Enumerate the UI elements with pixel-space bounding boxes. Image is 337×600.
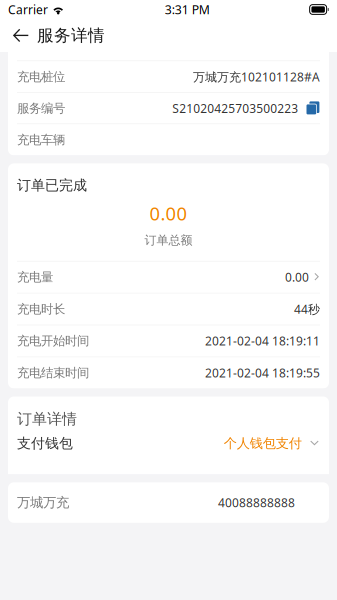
staticText: 44秒 <box>294 301 320 317</box>
staticText: 充电量 <box>17 269 53 285</box>
button[interactable]: 万城万充 <box>8 482 329 523</box>
staticText: 支付钱包 <box>17 435 73 452</box>
button[interactable]: 支付钱包 <box>8 428 329 458</box>
button[interactable]: Back <box>5 20 37 50</box>
staticText: 万城万充 <box>17 494 69 511</box>
staticText: 万城万充102101128#A <box>193 69 320 85</box>
staticText: 订单已完成 <box>17 176 87 194</box>
staticText: 2021-02-04 18:19:11 <box>205 333 320 349</box>
staticText: 个人钱包支付 <box>224 435 302 452</box>
button[interactable]: 服务编号 <box>8 93 329 123</box>
button[interactable]: 充电量 <box>8 261 329 293</box>
staticText: 0.00 <box>149 201 187 226</box>
staticText: 订单详情 <box>17 409 77 428</box>
staticText: 充电时长 <box>17 301 65 317</box>
staticText: 服务编号 <box>17 100 65 116</box>
staticText: 充电车辆 <box>17 132 65 147</box>
staticText: 40088888888 <box>218 494 295 511</box>
staticText: Carrier <box>8 1 48 18</box>
staticText: 2021-02-04 18:19:55 <box>205 365 320 381</box>
staticText: 充电开始时间 <box>17 333 89 349</box>
staticText: S21020425703500223 <box>172 100 298 116</box>
staticText: 服务详情 <box>37 25 105 46</box>
staticText: 3:31 PM <box>165 1 210 18</box>
staticText: 充电桩位 <box>17 69 65 84</box>
staticText: 0.00 <box>285 269 309 285</box>
staticText: 充电结束时间 <box>17 365 89 381</box>
staticText: 订单总额 <box>144 233 192 248</box>
